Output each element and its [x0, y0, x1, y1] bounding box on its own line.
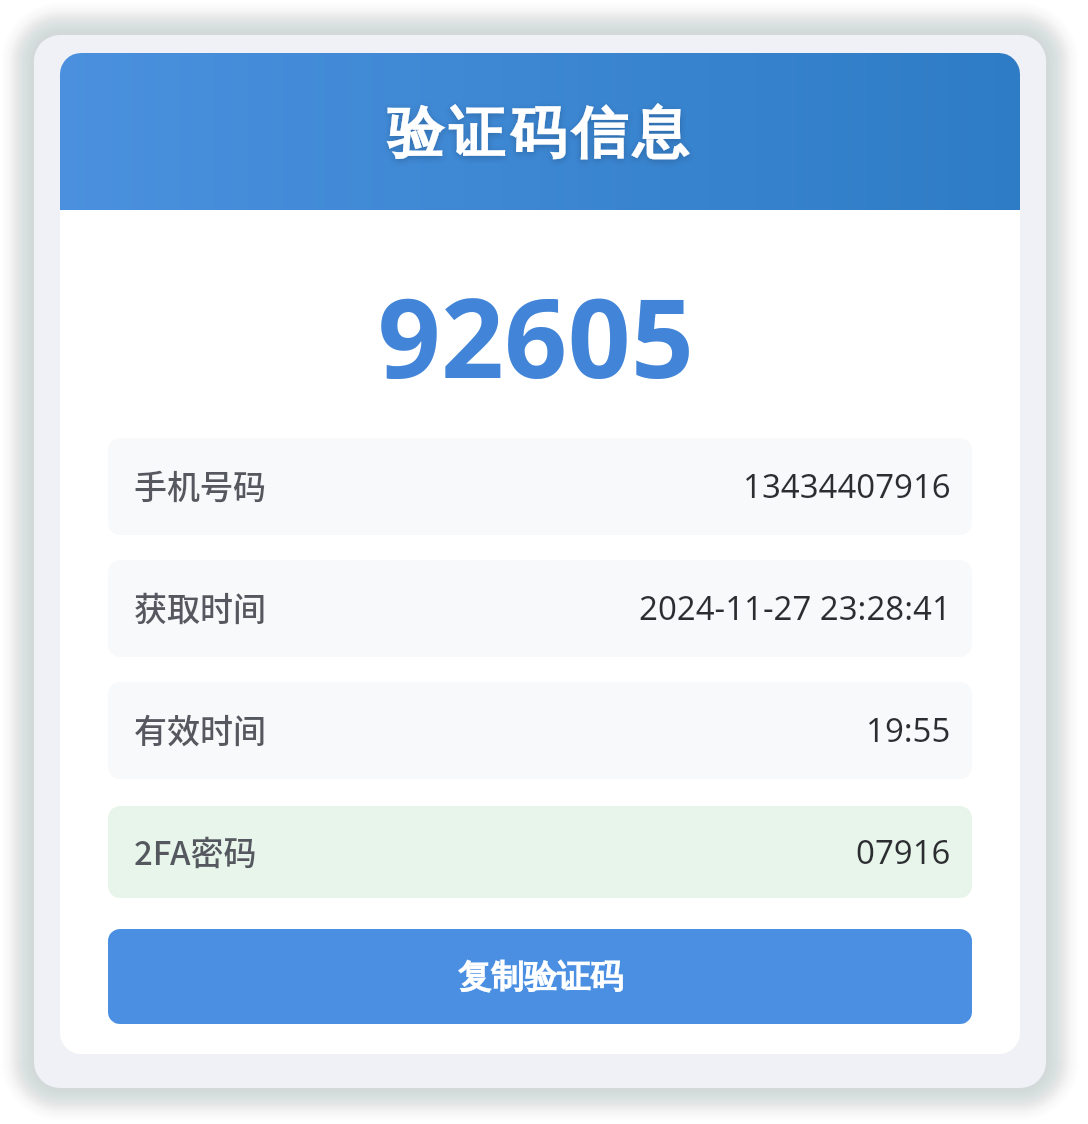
- staticText: 验证码信息: [385, 98, 691, 169]
- staticText: 92605: [108, 260, 964, 410]
- button[interactable]: 获取时间: [108, 560, 972, 657]
- staticText: 2FA密码: [134, 827, 257, 875]
- button[interactable]: 有效时间: [108, 682, 972, 779]
- staticText: 13434407916: [743, 463, 951, 508]
- staticText: 手机号码: [134, 461, 266, 509]
- staticText: 有效时间: [134, 705, 266, 753]
- button[interactable]: 复制验证码: [108, 929, 972, 1024]
- staticText: 获取时间: [134, 583, 266, 631]
- staticText: 07916: [856, 829, 951, 874]
- staticText: 19:55: [866, 707, 951, 752]
- staticText: 复制验证码: [458, 956, 623, 998]
- button[interactable]: 2FA密码: [108, 806, 972, 898]
- staticText: 2024-11-27 23:28:41: [639, 585, 951, 630]
- button[interactable]: 手机号码: [108, 438, 972, 535]
